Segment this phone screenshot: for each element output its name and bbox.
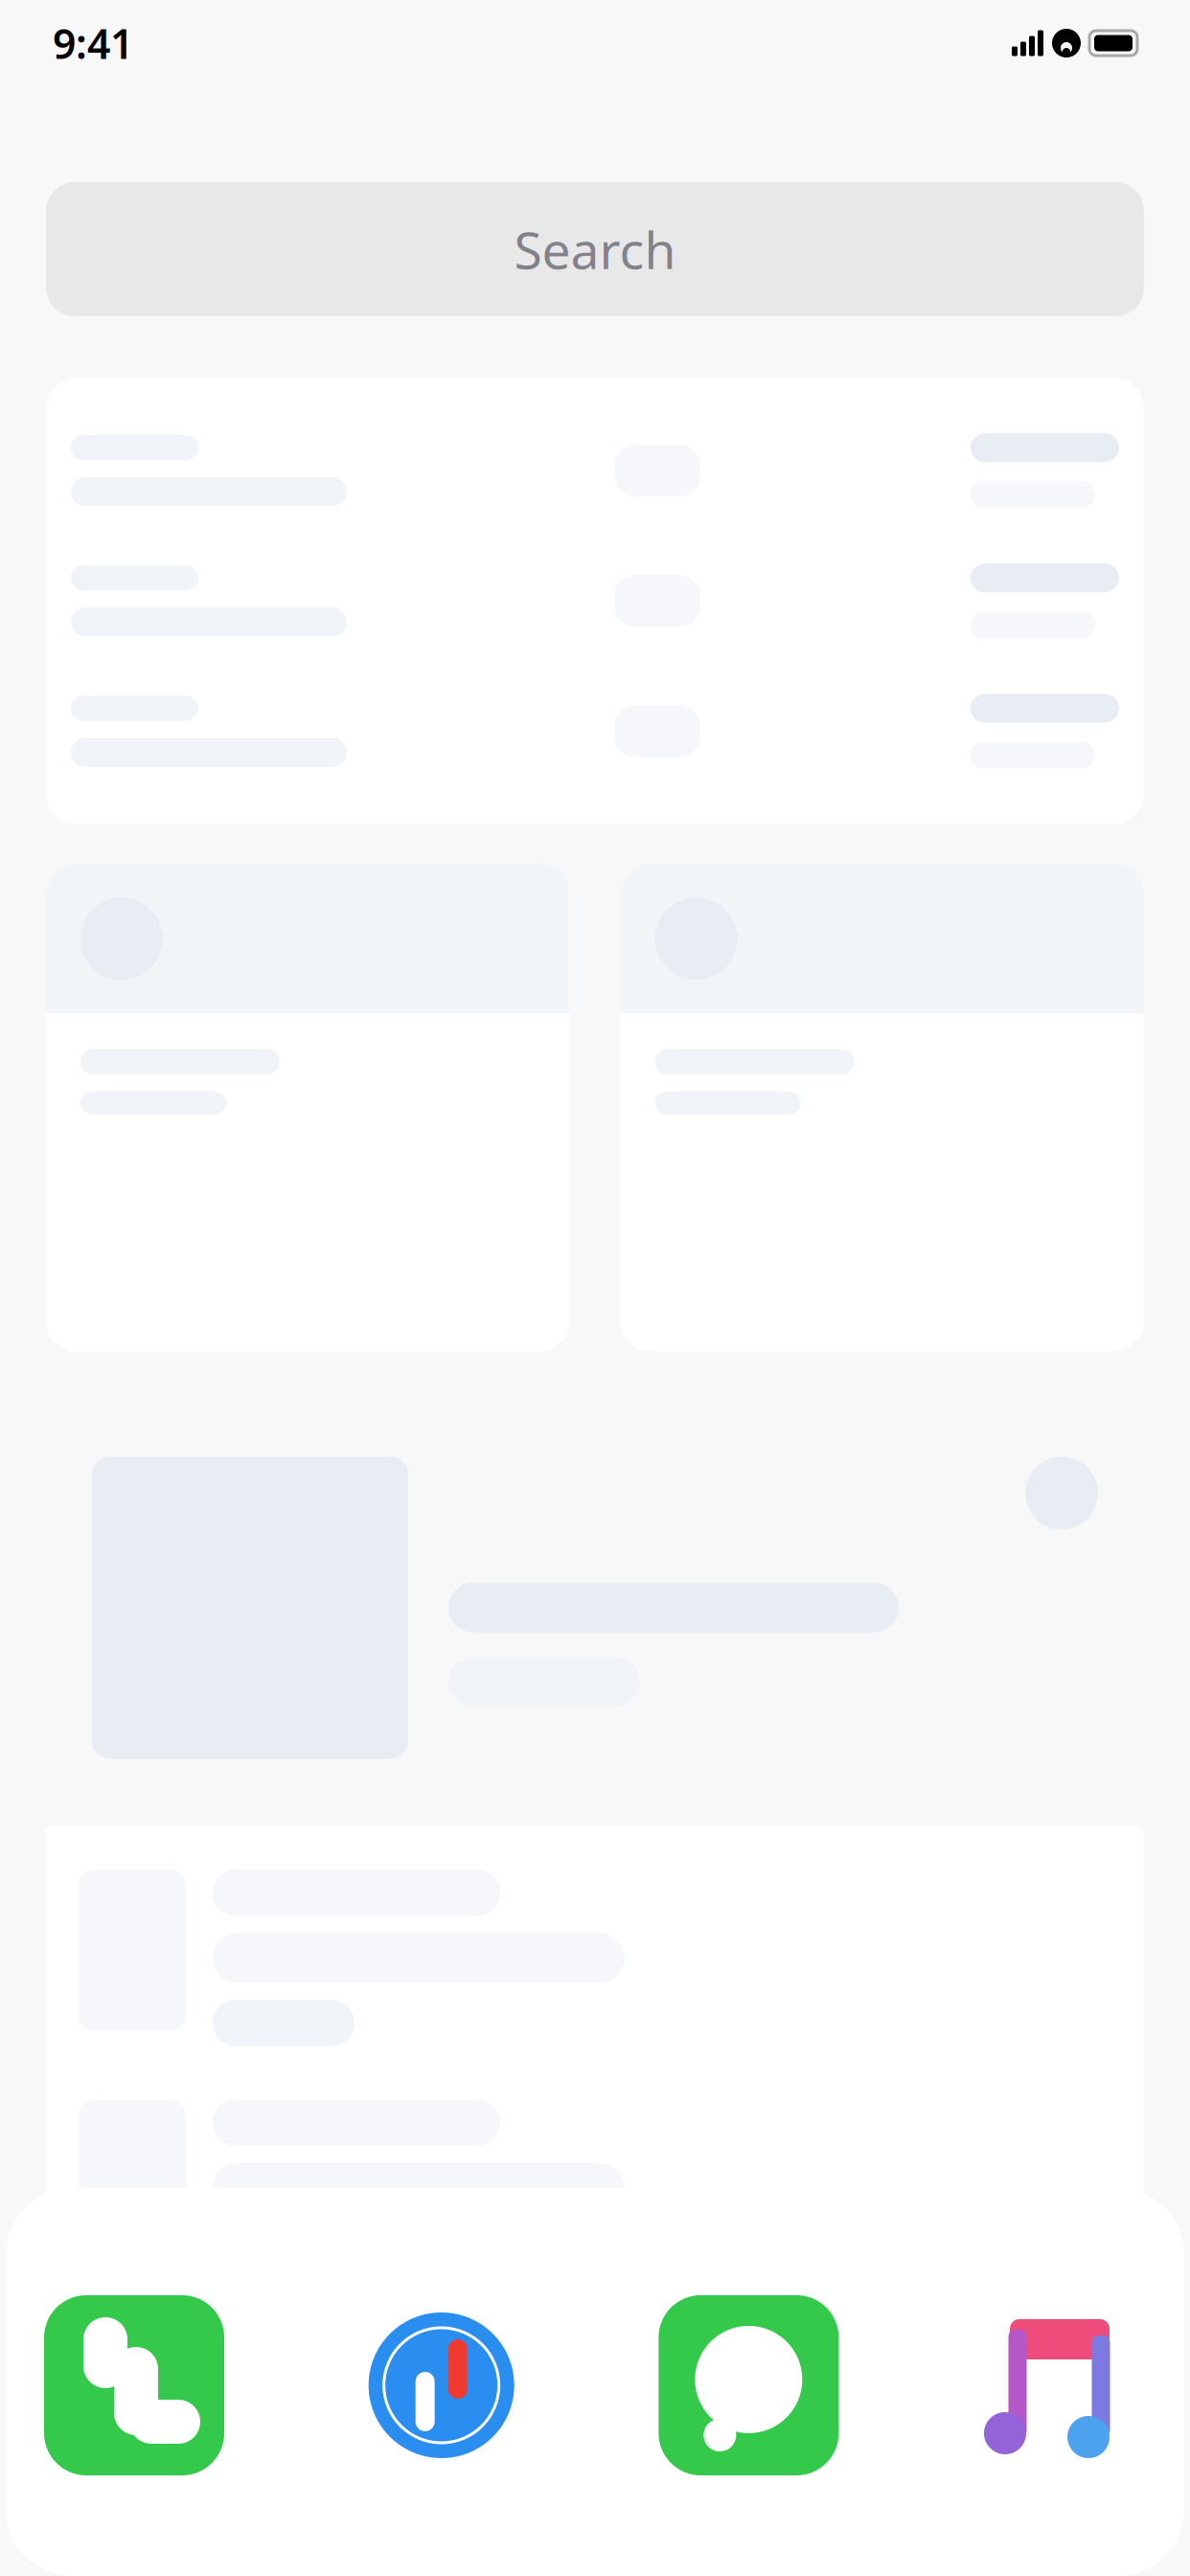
button[interactable]: Messages (659, 2295, 839, 2475)
staticText: 9:41 (53, 16, 133, 70)
button[interactable]: Search (46, 182, 1144, 316)
button[interactable] (46, 864, 570, 1351)
button[interactable] (46, 2100, 1144, 2276)
button[interactable] (46, 1411, 1144, 1805)
button[interactable]: Safari (351, 2295, 531, 2475)
button[interactable] (620, 864, 1144, 1351)
staticText: Search (514, 215, 676, 283)
button[interactable] (46, 378, 1144, 824)
button[interactable]: Phone (44, 2295, 224, 2475)
button[interactable] (46, 1870, 1144, 2046)
button[interactable]: Music (966, 2295, 1146, 2475)
